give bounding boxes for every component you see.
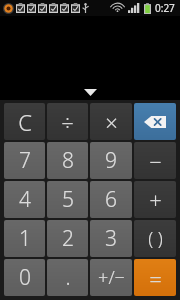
button[interactable]: . bbox=[47, 259, 88, 296]
staticText: 0 bbox=[19, 263, 31, 292]
staticText: 7 bbox=[19, 146, 31, 175]
staticText: +/− bbox=[98, 265, 125, 290]
staticText: 8 bbox=[62, 146, 74, 175]
staticText: ( ) bbox=[148, 226, 163, 251]
button[interactable]: 6 bbox=[90, 181, 132, 218]
staticText: − bbox=[149, 146, 162, 176]
staticText: ÷ bbox=[61, 107, 74, 137]
button[interactable]: − bbox=[134, 142, 176, 179]
button[interactable]: ÷ bbox=[47, 103, 88, 140]
button[interactable]: 3 bbox=[90, 220, 132, 257]
staticText: 3 bbox=[105, 224, 117, 253]
staticText: × bbox=[105, 107, 118, 137]
button[interactable]: 1 bbox=[4, 220, 45, 257]
staticText: 9 bbox=[105, 146, 117, 175]
button[interactable]: 0 bbox=[4, 259, 45, 296]
staticText: 0:27 bbox=[155, 1, 175, 15]
staticText: + bbox=[149, 185, 162, 215]
button[interactable]: Delete bbox=[134, 103, 176, 140]
button[interactable]: 5 bbox=[47, 181, 88, 218]
button[interactable]: 4 bbox=[4, 181, 45, 218]
button[interactable]: 8 bbox=[47, 142, 88, 179]
button[interactable]: C bbox=[4, 103, 45, 140]
staticText: = bbox=[149, 263, 162, 293]
button[interactable]: × bbox=[90, 103, 132, 140]
button[interactable]: ( ) bbox=[134, 220, 176, 257]
staticText: 2 bbox=[62, 224, 74, 253]
button[interactable]: = bbox=[134, 259, 176, 296]
button[interactable]: + bbox=[134, 181, 176, 218]
staticText: . bbox=[65, 263, 71, 292]
staticText: 5 bbox=[62, 185, 74, 214]
staticText: 1 bbox=[19, 224, 31, 253]
staticText: C bbox=[18, 107, 32, 137]
button[interactable]: 2 bbox=[47, 220, 88, 257]
staticText: 4 bbox=[19, 185, 31, 214]
staticText: 6 bbox=[105, 185, 117, 214]
button[interactable]: +/− bbox=[90, 259, 132, 296]
button[interactable]: 7 bbox=[4, 142, 45, 179]
button[interactable]: 9 bbox=[90, 142, 132, 179]
